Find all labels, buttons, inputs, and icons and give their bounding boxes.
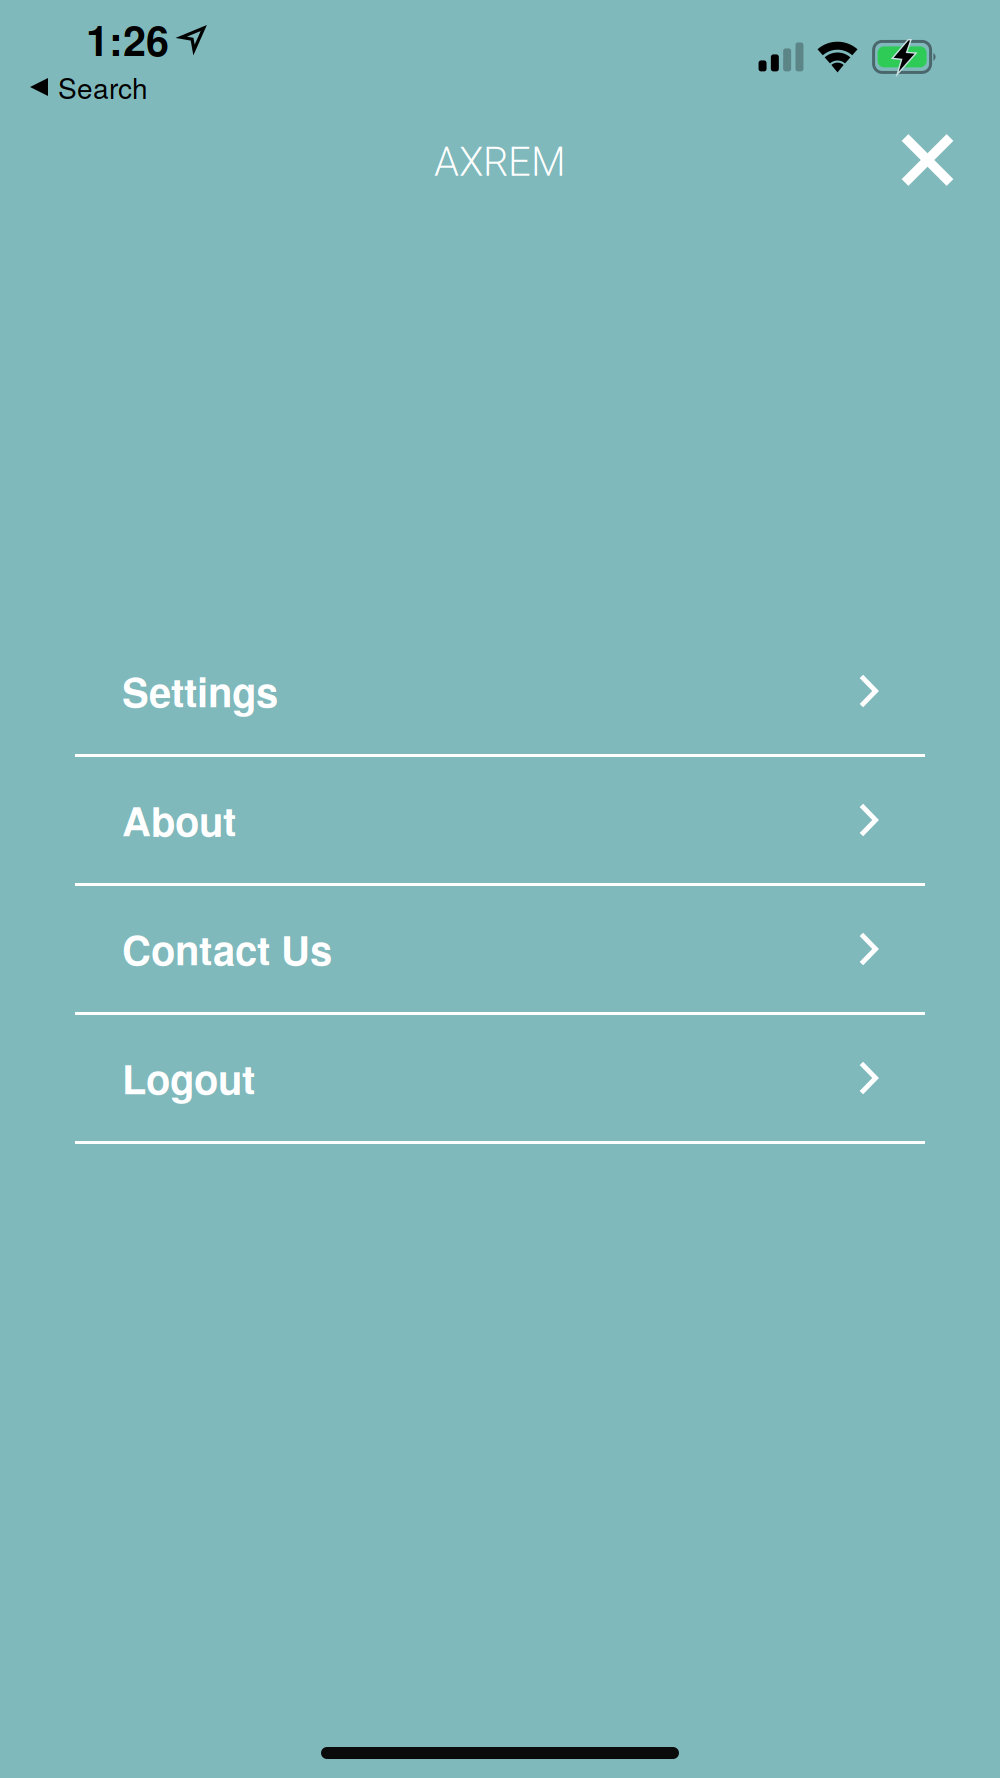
button[interactable]: Close bbox=[887, 119, 968, 200]
button[interactable]: About bbox=[75, 757, 925, 886]
staticText: Contact Us bbox=[122, 920, 332, 978]
staticText: 1:26 bbox=[86, 9, 169, 69]
staticText: Logout bbox=[122, 1049, 255, 1107]
staticText: Search bbox=[58, 67, 148, 107]
button[interactable]: Search bbox=[0, 68, 166, 106]
staticText: AXREM bbox=[434, 139, 566, 185]
staticText: Settings bbox=[122, 662, 278, 720]
staticText: About bbox=[122, 791, 236, 849]
button[interactable]: Settings bbox=[75, 628, 925, 757]
button[interactable]: Contact Us bbox=[75, 886, 925, 1015]
button[interactable]: Logout bbox=[75, 1015, 925, 1144]
